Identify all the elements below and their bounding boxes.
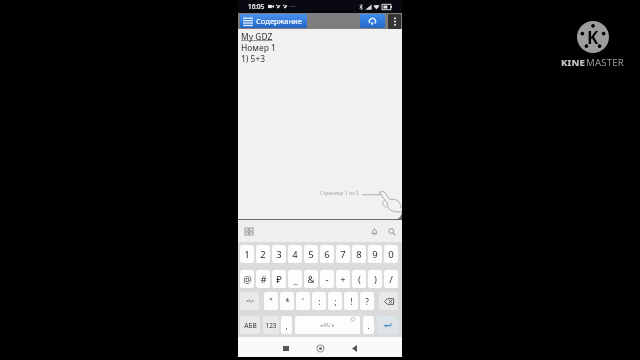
- staticText: ₽: [276, 273, 282, 286]
- staticText: +: [340, 273, 346, 286]
- staticText: 2: [260, 248, 266, 261]
- button[interactable]: ?: [360, 292, 374, 310]
- staticText: 9: [372, 248, 378, 261]
- staticText: 5: [308, 248, 314, 261]
- button[interactable]: Search: [385, 225, 398, 238]
- staticText: Страница 1 из 2: [320, 190, 359, 197]
- staticText: /: [389, 273, 393, 286]
- button[interactable]: 2: [256, 245, 270, 263]
- button[interactable]: @: [240, 270, 254, 288]
- button[interactable]: АБВ: [240, 316, 260, 334]
- staticText: 4: [292, 248, 298, 261]
- staticText: K: [587, 26, 599, 49]
- button[interactable]: #: [256, 270, 270, 288]
- button[interactable]: Содержание: [240, 14, 307, 28]
- button[interactable]: 123: [263, 316, 279, 334]
- button[interactable]: Enter: [377, 316, 398, 334]
- staticText: *: [285, 296, 290, 307]
- button[interactable]: &: [304, 270, 318, 288]
- staticText: 0: [388, 248, 394, 261]
- staticText: :: [318, 296, 321, 307]
- staticText: 3: [276, 248, 282, 261]
- button[interactable]: ": [264, 292, 278, 310]
- button[interactable]: Notifications: [368, 225, 381, 238]
- staticText: Содержание: [256, 16, 302, 26]
- button[interactable]: 9: [368, 245, 382, 263]
- button[interactable]: (: [352, 270, 366, 288]
- button[interactable]: ): [368, 270, 382, 288]
- button[interactable]: !: [344, 292, 358, 310]
- button[interactable]: 8: [352, 245, 366, 263]
- button[interactable]: 6: [320, 245, 334, 263]
- staticText: My GDZ: [241, 31, 273, 42]
- staticText: ): [374, 273, 377, 286]
- button[interactable]: *: [280, 292, 294, 310]
- staticText: 8: [356, 248, 362, 261]
- button[interactable]: 3: [272, 245, 286, 263]
- staticText: -: [325, 273, 329, 286]
- staticText: 1) 5+3: [241, 53, 265, 64]
- button[interactable]: 7: [336, 245, 350, 263]
- button[interactable]: Keyboard modes: [242, 225, 255, 238]
- staticText: !: [350, 296, 353, 307]
- staticText: =\<: [246, 298, 254, 305]
- staticText: MASTER: [586, 56, 624, 69]
- staticText: 7: [340, 248, 346, 261]
- staticText: ;: [334, 296, 337, 307]
- button[interactable]: -: [320, 270, 334, 288]
- button[interactable]: .: [363, 316, 374, 334]
- staticText: @: [243, 273, 252, 286]
- staticText: (: [358, 273, 361, 286]
- staticText: 1: [244, 248, 250, 261]
- button[interactable]: Rotate screen: [360, 14, 385, 28]
- button[interactable]: :: [312, 292, 326, 310]
- staticText: ◂ RU ▸: [320, 322, 335, 329]
- staticText: _: [293, 273, 298, 286]
- button[interactable]: _: [288, 270, 302, 288]
- staticText: ?: [365, 296, 369, 307]
- staticText: 123: [265, 321, 277, 330]
- staticText: &: [307, 273, 315, 286]
- staticText: 16:05: [248, 2, 265, 11]
- staticText: 6: [324, 248, 330, 261]
- button[interactable]: Recents: [275, 340, 297, 357]
- staticText: #: [260, 273, 267, 286]
- staticText: KINE: [561, 56, 586, 69]
- staticText: АБВ: [244, 321, 257, 330]
- button[interactable]: Home: [309, 340, 331, 357]
- staticText: ': [302, 296, 304, 307]
- button[interactable]: ': [296, 292, 310, 310]
- staticText: .: [367, 320, 370, 331]
- button[interactable]: 4: [288, 245, 302, 263]
- staticText: ,: [285, 320, 288, 331]
- button[interactable]: ₽: [272, 270, 286, 288]
- button[interactable]: +: [336, 270, 350, 288]
- button[interactable]: ;: [328, 292, 342, 310]
- button[interactable]: Space: [295, 316, 360, 334]
- button[interactable]: Back: [343, 340, 365, 357]
- button[interactable]: Backspace: [379, 292, 398, 310]
- button[interactable]: ,: [281, 316, 292, 334]
- button[interactable]: 5: [304, 245, 318, 263]
- button[interactable]: 0: [384, 245, 398, 263]
- button[interactable]: =\<: [240, 292, 259, 310]
- staticText: Номер 1: [241, 42, 276, 53]
- staticText: ": [269, 296, 273, 307]
- button[interactable]: More options: [388, 14, 401, 29]
- button[interactable]: /: [384, 270, 398, 288]
- button[interactable]: 1: [240, 245, 254, 263]
